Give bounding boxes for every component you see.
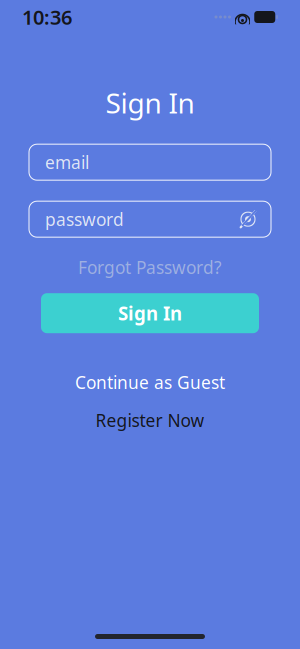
button[interactable]: Continue as Guest — [75, 371, 225, 393]
button[interactable]: Forgot Password? — [78, 253, 222, 281]
staticText: Continue as Guest — [75, 371, 225, 394]
staticText: password — [45, 208, 124, 231]
button[interactable]: password — [29, 201, 271, 237]
button[interactable]: Register Now — [95, 409, 204, 431]
staticText: email — [45, 151, 89, 174]
button[interactable]: email — [29, 144, 271, 180]
staticText: Forgot Password? — [78, 256, 222, 279]
staticText: Sign In — [105, 84, 194, 121]
button[interactable]: Hide password — [233, 204, 263, 234]
staticText: Sign In — [118, 301, 182, 326]
staticText: 10:36 — [22, 4, 72, 30]
staticText: Register Now — [95, 409, 204, 432]
button[interactable]: Sign In — [41, 293, 259, 333]
